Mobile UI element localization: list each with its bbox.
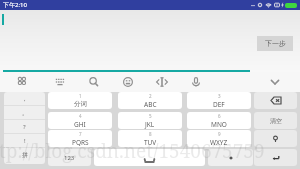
button[interactable]: ? <box>4 120 45 134</box>
button[interactable]: 6 <box>187 112 251 129</box>
staticText: 下一步 <box>265 39 286 48</box>
staticText: 清空 <box>270 117 282 125</box>
staticText: tp://blog.csdn.net/1540675759 <box>0 138 265 164</box>
staticText: TUV <box>144 138 157 147</box>
staticText: MNO <box>211 120 227 129</box>
staticText: 9 <box>218 131 221 137</box>
staticText: 2 <box>149 93 152 99</box>
staticText: JKL <box>145 120 155 129</box>
staticText: 5 <box>149 113 152 119</box>
button[interactable]: Enter <box>254 149 297 166</box>
button[interactable]: 5 <box>118 112 182 129</box>
button[interactable]: Hide keyboard <box>265 72 287 92</box>
staticText: 6 <box>218 113 221 119</box>
staticText: ! <box>24 137 26 145</box>
staticText: WXYZ <box>210 138 228 147</box>
button[interactable]: Period <box>208 149 253 166</box>
button[interactable]: 。 <box>4 106 45 120</box>
button[interactable]: Symbols <box>13 72 33 92</box>
button[interactable]: 2 <box>118 92 182 109</box>
button[interactable]: Voice input <box>254 130 297 147</box>
staticText: ABC <box>144 100 157 109</box>
staticText: GHI <box>74 120 86 129</box>
button[interactable]: Space <box>94 149 205 166</box>
button[interactable]: Clear <box>254 112 297 129</box>
staticText: 分词 <box>74 100 87 108</box>
staticText: 拼 <box>22 151 28 159</box>
staticText: DEF <box>213 100 225 109</box>
button[interactable]: 3 <box>187 92 251 109</box>
button[interactable]: Backspace <box>254 92 297 109</box>
button[interactable]: 4 <box>48 112 112 129</box>
button[interactable]: 123 <box>48 149 91 166</box>
button[interactable]: Keyboard layout <box>50 72 70 92</box>
button[interactable]: 拼 <box>4 148 45 162</box>
button[interactable]: 1 <box>48 92 112 109</box>
staticText: 123 <box>64 154 75 162</box>
button[interactable]: Move cursor <box>152 72 172 92</box>
button[interactable]: 7 <box>48 130 112 147</box>
staticText: , <box>24 95 26 103</box>
staticText: 。 <box>22 109 28 117</box>
staticText: 7 <box>79 131 82 137</box>
button[interactable]: 下一步 <box>257 36 293 51</box>
button[interactable]: Emoji <box>118 72 138 92</box>
button[interactable]: , <box>4 92 45 106</box>
button[interactable]: Voice input <box>186 72 206 92</box>
staticText: 8 <box>149 131 152 137</box>
staticText: ? <box>23 123 26 131</box>
staticText: 1 <box>79 93 82 99</box>
staticText: 3 <box>218 93 221 99</box>
button[interactable]: 8 <box>118 130 182 147</box>
staticText: 下午2:10 <box>3 1 27 9</box>
button[interactable]: ! <box>4 134 45 148</box>
button[interactable]: Search <box>84 72 104 92</box>
staticText: PQRS <box>72 138 89 147</box>
button[interactable]: 9 <box>187 130 251 147</box>
staticText: 4 <box>79 113 82 119</box>
